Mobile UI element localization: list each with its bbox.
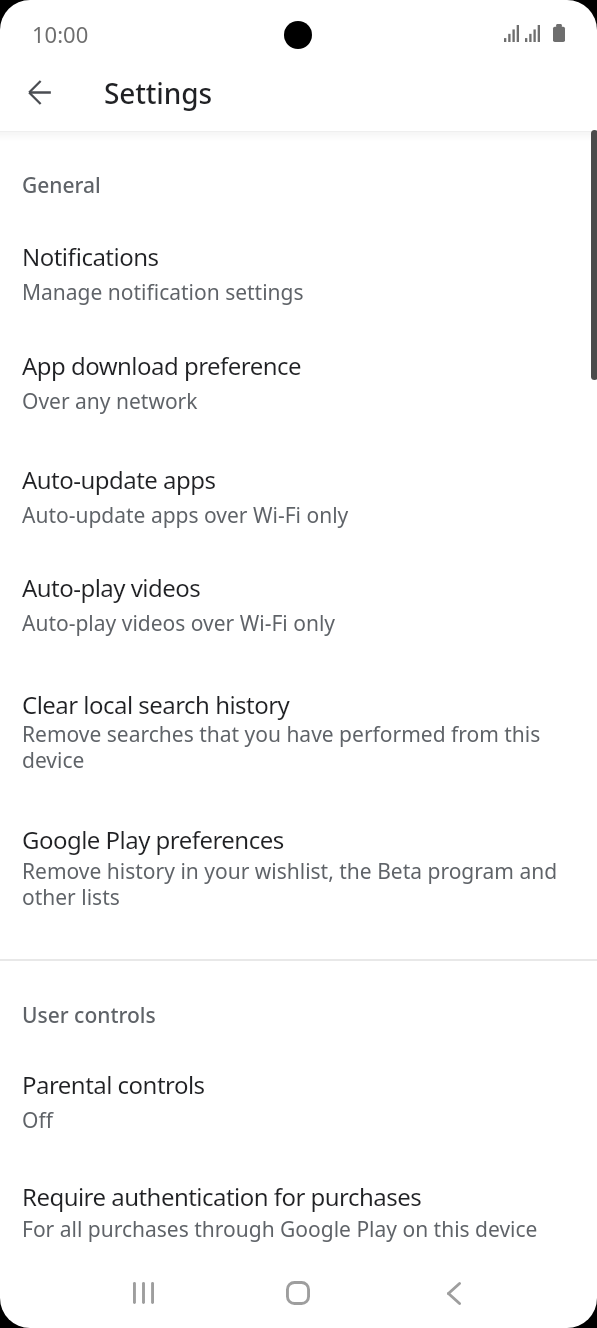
staticText: Clear local search history: [22, 688, 290, 721]
button[interactable]: Recent apps: [108, 1258, 178, 1328]
staticText: Auto-update apps: [22, 463, 216, 496]
staticText: General: [22, 171, 101, 200]
button[interactable]: Back: [419, 1258, 489, 1328]
staticText: Parental controls: [22, 1068, 205, 1101]
staticText: Remove history in your wishlist, the Bet…: [22, 857, 567, 912]
staticText: 10:00: [32, 19, 89, 49]
button[interactable]: Back: [14, 66, 66, 118]
staticText: User controls: [22, 1001, 156, 1030]
staticText: For all purchases through Google Play on…: [22, 1215, 567, 1244]
staticText: Settings: [104, 74, 212, 112]
button[interactable]: Parental controls: [0, 1048, 597, 1155]
staticText: Manage notification settings: [22, 278, 567, 307]
staticText: App download preference: [22, 349, 301, 382]
button[interactable]: App download preference: [0, 330, 597, 440]
staticText: Auto-play videos: [22, 571, 201, 604]
button[interactable]: Home: [263, 1258, 333, 1328]
button[interactable]: Auto-play videos: [0, 550, 597, 665]
staticText: Over any network: [22, 387, 567, 416]
staticText: Off: [22, 1106, 567, 1135]
staticText: Notifications: [22, 240, 159, 273]
button[interactable]: Auto-update apps: [0, 440, 597, 550]
button[interactable]: Require authentication for purchases: [0, 1155, 597, 1255]
staticText: Google Play preferences: [22, 823, 284, 856]
staticText: Auto-play videos over Wi-Fi only: [22, 609, 567, 638]
button[interactable]: Clear local search history: [0, 665, 597, 800]
button[interactable]: Notifications: [0, 222, 597, 330]
staticText: Require authentication for purchases: [22, 1180, 422, 1213]
staticText: Remove searches that you have performed …: [22, 720, 567, 775]
button[interactable]: Google Play preferences: [0, 800, 597, 935]
staticText: Auto-update apps over Wi-Fi only: [22, 501, 567, 530]
